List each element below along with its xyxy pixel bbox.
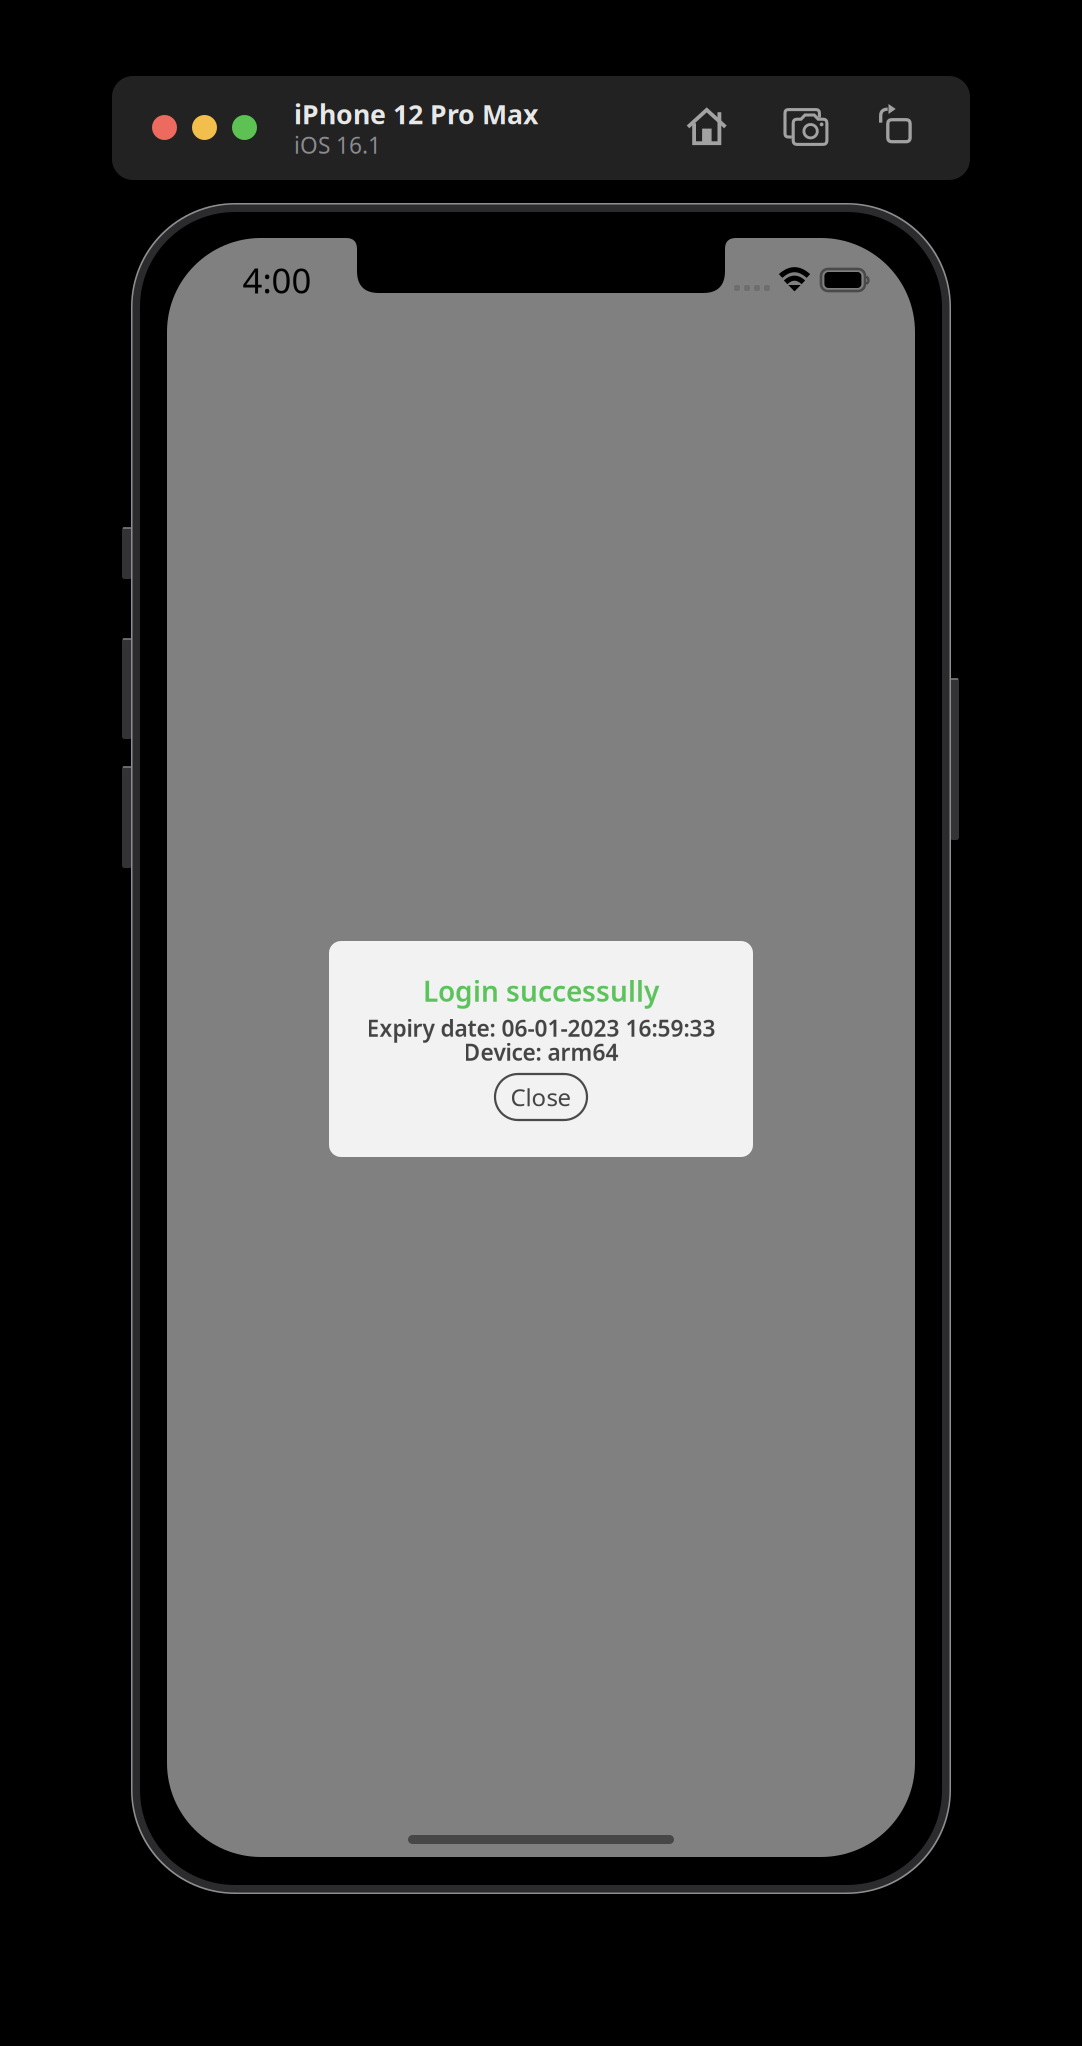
- staticText: Close: [510, 1081, 571, 1113]
- button[interactable]: Home: [687, 109, 729, 149]
- button[interactable]: Close: [495, 1074, 587, 1120]
- button[interactable]: Screenshot: [783, 108, 829, 148]
- staticText: iOS 16.1: [294, 130, 381, 160]
- staticText: iPhone 12 Pro Max: [294, 96, 538, 132]
- staticText: Device: arm64: [463, 1037, 618, 1067]
- staticText: 4:00: [242, 257, 311, 303]
- staticText: Login successully: [423, 972, 659, 1010]
- staticText: Expiry date: 06-01-2023 16:59:33: [366, 1013, 715, 1043]
- button[interactable]: Share: [877, 105, 913, 145]
